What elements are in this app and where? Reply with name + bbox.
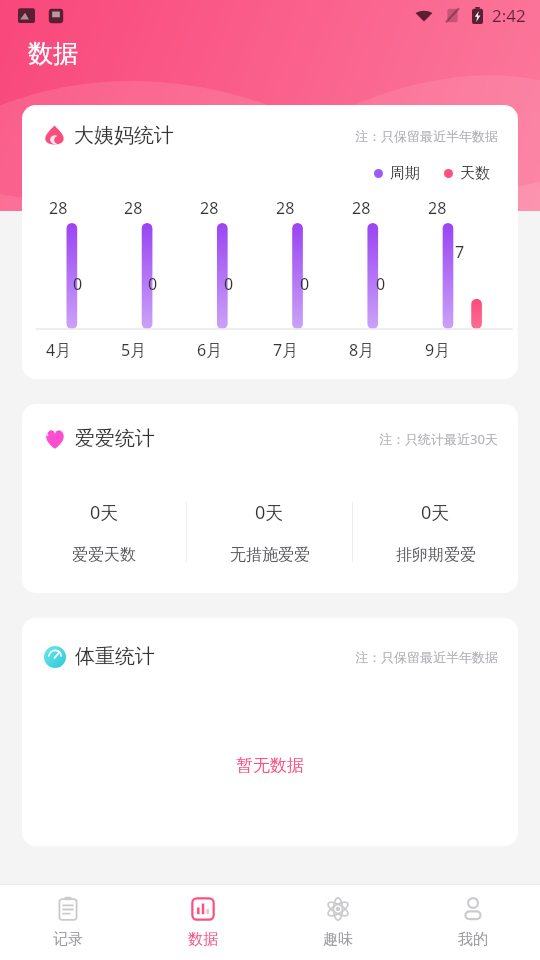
button[interactable]: 趣味 [270,885,405,960]
staticText: 8月 [349,339,375,361]
staticText: 0天 [421,500,450,525]
staticText: 0天 [255,500,284,525]
staticText: 28 [428,197,447,219]
staticText: 0天 [90,500,119,525]
button[interactable]: 0天 [353,493,518,571]
staticText: 0 [224,273,234,295]
staticText: 爱爱统计 [75,426,155,451]
staticText: 0 [148,273,158,295]
button[interactable]: 大姨妈统计 [22,105,518,379]
staticText: 28 [352,197,371,219]
staticText: 5月 [121,339,147,361]
staticText: 记录 [53,930,83,949]
staticText: 9月 [425,339,451,361]
staticText: 周期 [390,164,420,183]
staticText: 7月 [273,339,299,361]
staticText: 28 [49,197,68,219]
staticText: 28 [200,197,219,219]
button[interactable]: 数据 [135,885,270,960]
staticText: 无措施爱爱 [230,545,310,565]
button[interactable]: 0天 [22,493,186,571]
staticText: 数据 [28,38,78,69]
staticText: 我的 [458,930,488,949]
staticText: 0 [300,273,310,295]
button[interactable]: 0天 [187,493,352,571]
staticText: 0 [376,273,386,295]
staticText: 7 [455,241,465,263]
staticText: 数据 [188,930,218,949]
staticText: 天数 [460,164,490,183]
staticText: 注：只保留最近半年数据 [355,649,498,665]
staticText: 大姨妈统计 [74,123,174,148]
staticText: 注：只保留最近半年数据 [355,128,498,144]
staticText: 0 [73,273,83,295]
staticText: 28 [276,197,295,219]
staticText: 暂无数据 [236,755,304,776]
staticText: 6月 [197,339,223,361]
staticText: 28 [124,197,143,219]
staticText: 趣味 [323,930,353,949]
staticText: 注：只统计最近30天 [379,430,498,448]
staticText: 4月 [46,339,72,361]
button[interactable]: 体重统计 [22,618,518,846]
staticText: 排卵期爱爱 [396,545,476,565]
staticText: 爱爱天数 [72,545,136,565]
staticText: 2:42 [492,4,526,27]
staticText: 体重统计 [75,644,155,669]
button[interactable]: 爱爱统计 [22,404,518,593]
button[interactable]: 我的 [405,885,540,960]
button[interactable]: 记录 [0,885,135,960]
